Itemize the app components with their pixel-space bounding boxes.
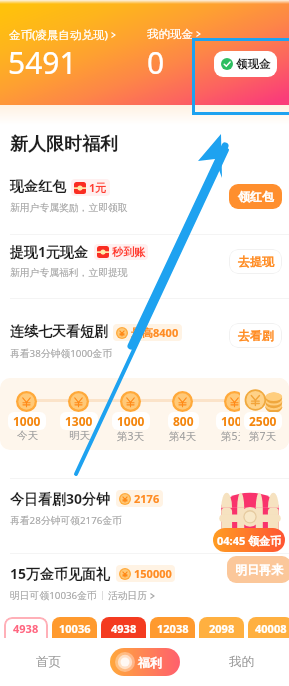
staticText: 最高8400 xyxy=(131,325,179,340)
staticText: 明日可领10036金币 xyxy=(10,589,97,602)
staticText: 4938 xyxy=(111,621,137,636)
staticText: 新人限时福利 xyxy=(10,133,118,156)
button[interactable]: 领现金 xyxy=(214,51,277,77)
staticText: 去提现 xyxy=(238,254,274,269)
staticText: 秒到账 xyxy=(112,245,145,259)
staticText: 12038 xyxy=(157,621,189,636)
staticText: 新用户专属福利，立即提现 xyxy=(10,267,128,279)
staticText: 第3天 xyxy=(117,429,145,443)
staticText: 15万金币见面礼 xyxy=(10,564,111,583)
staticText: 金币(凌晨自动兑现) xyxy=(9,27,108,43)
staticText: 04:45 领金币 xyxy=(217,533,282,548)
staticText: 去看剧 xyxy=(238,328,274,343)
staticText: 第5天 xyxy=(221,429,249,443)
staticText: 10036 xyxy=(59,621,91,636)
staticText: 明天 xyxy=(69,429,90,442)
button[interactable]: 去提现 xyxy=(229,249,282,274)
staticText: 连续七天看短剧 xyxy=(10,323,108,341)
staticText: 1000 xyxy=(221,413,249,429)
button[interactable]: 首页 xyxy=(0,638,97,686)
staticText: 1300 xyxy=(65,413,93,429)
staticText: 现金红包 xyxy=(10,178,66,196)
staticText: 4938 xyxy=(13,621,39,636)
staticText: 40008 xyxy=(255,621,287,636)
staticText: 150000 xyxy=(134,566,172,581)
button[interactable]: 去看剧 xyxy=(229,323,282,348)
staticText: 首页 xyxy=(36,654,61,670)
button[interactable]: 明日再来 xyxy=(227,556,289,583)
staticText: 我的现金 xyxy=(147,27,193,41)
staticText: 0 xyxy=(147,42,165,83)
staticText: 1000 xyxy=(13,413,41,429)
button[interactable]: 04:45 领金币 xyxy=(213,528,285,552)
staticText: 2176 xyxy=(134,491,160,506)
staticText: 我的 xyxy=(229,654,254,670)
staticText: 再看38分钟领1000金币 xyxy=(10,347,113,360)
button[interactable]: 福利 xyxy=(97,638,193,686)
staticText: 今天 xyxy=(17,429,38,442)
staticText: 领红包 xyxy=(238,189,274,204)
staticText: 2098 xyxy=(209,621,235,636)
staticText: 提现1元现金 xyxy=(10,242,89,261)
staticText: 活动日历 xyxy=(108,590,148,602)
staticText: 第7天 xyxy=(249,429,277,443)
staticText: 第4天 xyxy=(169,429,197,443)
staticText: 800 xyxy=(173,413,194,429)
staticText: 1元 xyxy=(89,180,107,195)
staticText: 明日再来 xyxy=(235,562,283,577)
button[interactable]: 领红包 xyxy=(229,184,282,209)
staticText: 5491 xyxy=(8,42,77,83)
staticText: 1000 xyxy=(117,413,145,429)
staticText: 领现金 xyxy=(236,57,271,71)
staticText: 福利 xyxy=(138,655,162,670)
staticText: 今日看剧30分钟 xyxy=(10,489,111,508)
staticText: 新用户专属奖励，立即领取 xyxy=(10,202,128,214)
staticText: 再看28分钟可领2176金币 xyxy=(10,514,122,527)
button[interactable]: 我的 xyxy=(193,638,289,686)
staticText: 2500 xyxy=(249,413,277,429)
